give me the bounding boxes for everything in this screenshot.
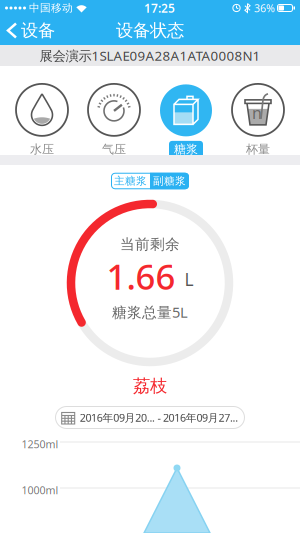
staticText: 设备 [21,20,55,41]
button[interactable]: 主糖浆 [111,173,150,189]
staticText: 36% [254,1,275,15]
staticText: 糖浆 [174,142,198,157]
staticText: 气压 [102,142,126,157]
button[interactable]: 气压 [88,84,140,158]
staticText: 水压 [30,142,54,157]
staticText: L [184,268,193,291]
button[interactable]: 设备 [0,20,55,41]
staticText: n [252,102,262,123]
staticText: 当前剩余 [120,235,180,253]
staticText: 糖浆总量5L [112,302,188,322]
button[interactable]: 糖浆 [160,84,212,158]
button[interactable]: 2016年09月20... - 2016年09月27... [55,406,245,429]
staticText: 中国移动 [29,1,73,14]
button[interactable]: n [232,84,284,158]
staticText: 1250ml [21,437,58,451]
staticText: 2016年09月20... - 2016年09月27... [80,410,238,425]
staticText: 杯量 [246,142,270,157]
button[interactable]: 副糖浆 [150,173,189,189]
staticText: 17:25 [144,0,175,16]
staticText: 副糖浆 [153,174,186,187]
staticText: 1000ml [21,483,58,497]
staticText: 1.66 [106,253,175,299]
staticText: 设备状态 [116,20,184,41]
staticText: 展会演示1SLAE09A28A1ATA0008N1 [39,47,260,64]
button[interactable]: 水压 [16,84,68,158]
staticText: 主糖浆 [114,174,147,187]
staticText: 荔枝 [133,375,167,397]
